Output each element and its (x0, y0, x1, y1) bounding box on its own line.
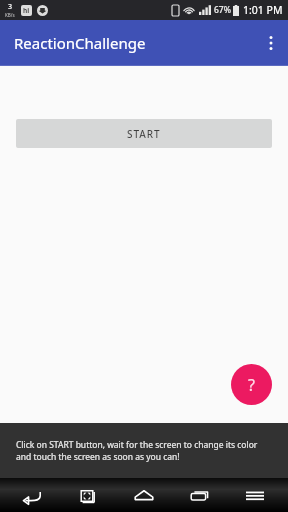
staticText: Click on START button, wait for the scre… (16, 439, 272, 463)
button[interactable]: Click on START button, wait for the scre… (0, 423, 288, 478)
staticText: 67% (214, 4, 231, 16)
button[interactable]: Multi window (65, 478, 111, 512)
staticText: hi (23, 6, 30, 15)
button[interactable]: Home (121, 478, 167, 512)
staticText: KB/s (5, 12, 15, 18)
staticText: ? (248, 374, 255, 396)
button[interactable]: START (16, 119, 272, 148)
button[interactable]: Menu (232, 478, 278, 512)
staticText: ReactionChallenge (14, 33, 146, 53)
staticText: START (127, 127, 161, 141)
button[interactable]: More options (254, 20, 288, 65)
button[interactable]: Help (231, 364, 272, 405)
button[interactable]: Back (10, 478, 56, 512)
staticText: 1:01 PM (243, 3, 283, 17)
staticText: 3 (8, 2, 13, 12)
button[interactable]: Recents (177, 478, 223, 512)
